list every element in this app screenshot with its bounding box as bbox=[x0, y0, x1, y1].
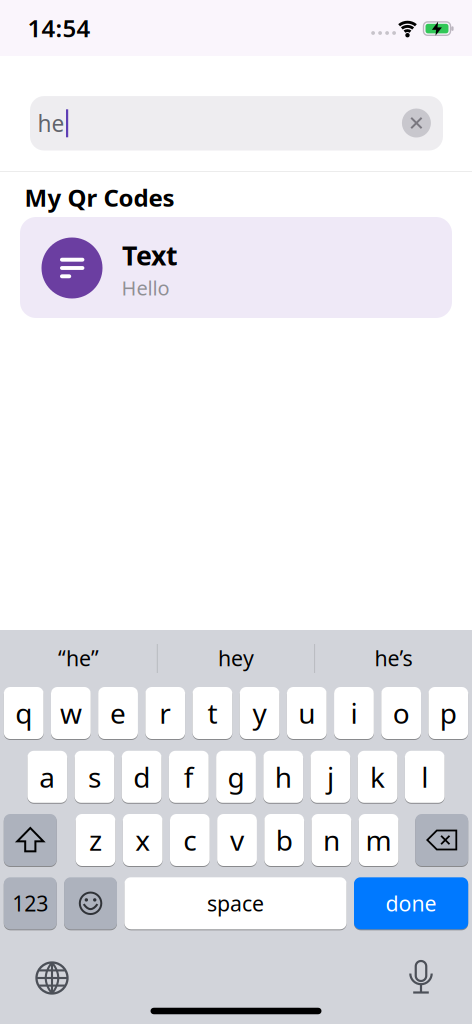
button[interactable]: c bbox=[170, 813, 210, 866]
button[interactable]: m bbox=[359, 813, 398, 866]
staticText: he bbox=[37, 108, 64, 138]
staticText: l bbox=[421, 758, 428, 795]
button[interactable]: Text bbox=[20, 217, 452, 318]
button[interactable]: p bbox=[428, 686, 468, 739]
button[interactable] bbox=[408, 958, 434, 994]
staticText: f bbox=[184, 758, 194, 795]
button[interactable]: k bbox=[358, 750, 397, 803]
button[interactable]: e bbox=[98, 686, 138, 739]
button[interactable] bbox=[4, 813, 57, 866]
staticText: z bbox=[89, 821, 102, 859]
button[interactable]: w bbox=[51, 686, 91, 739]
button[interactable]: done bbox=[354, 877, 468, 930]
button[interactable]: b bbox=[264, 813, 304, 866]
staticText: space bbox=[207, 889, 264, 917]
button[interactable]: v bbox=[217, 813, 257, 866]
staticText: y bbox=[253, 694, 267, 732]
staticText: done bbox=[386, 889, 437, 917]
staticText: j bbox=[327, 758, 334, 795]
button[interactable]: q bbox=[4, 686, 44, 739]
button[interactable]: f bbox=[169, 750, 209, 803]
button[interactable]: s bbox=[75, 750, 114, 803]
staticText: g bbox=[227, 758, 244, 795]
button[interactable]: “he” bbox=[0, 631, 157, 685]
button[interactable]: y bbox=[240, 686, 279, 739]
staticText: Text bbox=[122, 237, 178, 273]
button[interactable]: h bbox=[263, 750, 303, 803]
button[interactable]: l bbox=[405, 750, 445, 803]
staticText: m bbox=[366, 821, 392, 859]
staticText: q bbox=[15, 694, 32, 732]
button[interactable]: a bbox=[27, 750, 67, 803]
staticText: i bbox=[350, 694, 357, 732]
staticText: he’s bbox=[374, 644, 412, 672]
staticText: 14:54 bbox=[27, 12, 90, 44]
button[interactable]: j bbox=[310, 750, 350, 803]
button[interactable]: i bbox=[334, 686, 374, 739]
staticText: k bbox=[370, 758, 385, 795]
staticText: b bbox=[276, 821, 293, 859]
staticText: v bbox=[230, 821, 244, 859]
button[interactable]: t bbox=[192, 686, 232, 739]
staticText: Hello bbox=[121, 274, 169, 301]
button[interactable]: u bbox=[287, 686, 327, 739]
button[interactable]: o bbox=[381, 686, 421, 739]
button[interactable]: r bbox=[145, 686, 185, 739]
staticText: r bbox=[159, 694, 171, 732]
button[interactable] bbox=[415, 813, 468, 866]
button[interactable] bbox=[402, 108, 431, 137]
staticText: My Qr Codes bbox=[24, 182, 174, 213]
staticText: “he” bbox=[58, 644, 99, 672]
staticText: c bbox=[183, 821, 196, 859]
button[interactable]: n bbox=[311, 813, 351, 866]
staticText: h bbox=[275, 758, 292, 795]
staticText: w bbox=[60, 694, 82, 732]
staticText: x bbox=[135, 821, 150, 859]
staticText: p bbox=[440, 694, 457, 732]
button[interactable] bbox=[34, 960, 70, 996]
staticText: a bbox=[39, 758, 55, 795]
button[interactable]: z bbox=[76, 813, 115, 866]
staticText: u bbox=[298, 694, 315, 732]
button[interactable]: d bbox=[122, 750, 162, 803]
staticText: n bbox=[323, 821, 340, 859]
staticText: s bbox=[88, 758, 101, 795]
staticText: hey bbox=[218, 644, 254, 672]
button[interactable]: g bbox=[216, 750, 256, 803]
staticText: o bbox=[393, 694, 410, 732]
button[interactable]: 123 bbox=[4, 877, 57, 930]
button[interactable]: he’s bbox=[315, 631, 472, 685]
staticText: d bbox=[133, 758, 150, 795]
staticText: t bbox=[207, 694, 217, 732]
button[interactable]: space bbox=[124, 877, 347, 930]
staticText: e bbox=[110, 694, 126, 732]
button[interactable]: hey bbox=[157, 631, 314, 685]
staticText: 123 bbox=[12, 889, 48, 917]
button[interactable]: x bbox=[123, 813, 163, 866]
button[interactable] bbox=[64, 877, 117, 930]
